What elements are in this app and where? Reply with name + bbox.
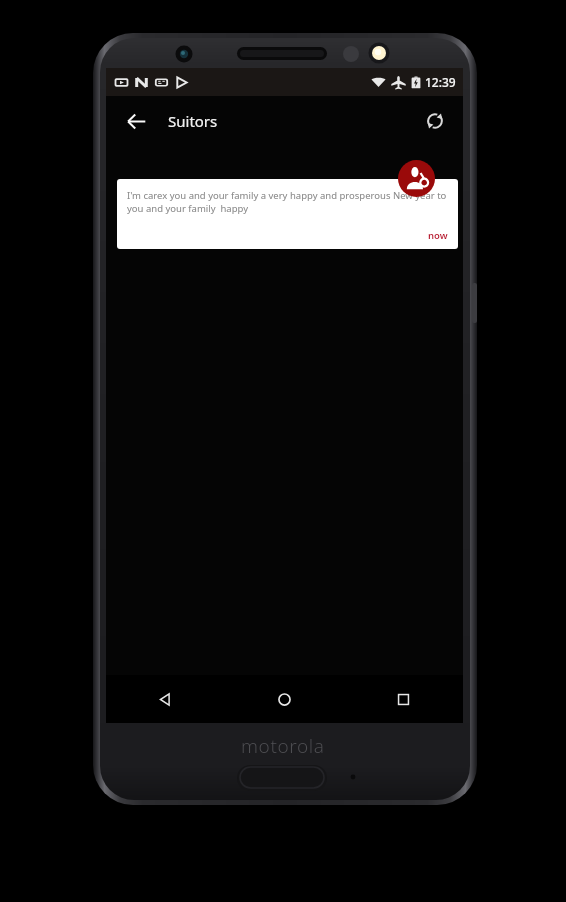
- button[interactable]: Home: [225, 675, 344, 723]
- button[interactable]: Contact: [398, 160, 435, 197]
- staticText: Suitors: [168, 111, 218, 131]
- staticText: I'm carex you and your family a very hap…: [127, 189, 448, 215]
- staticText: now: [428, 229, 448, 242]
- staticText: 12:39: [425, 74, 456, 90]
- button[interactable]: Back: [116, 101, 156, 141]
- button[interactable]: Recent apps: [344, 675, 463, 723]
- button[interactable]: Refresh: [415, 101, 455, 141]
- button[interactable]: I'm carex you and your family a very hap…: [117, 179, 458, 249]
- button[interactable]: Back: [106, 675, 225, 723]
- staticText: motorola: [241, 733, 325, 759]
